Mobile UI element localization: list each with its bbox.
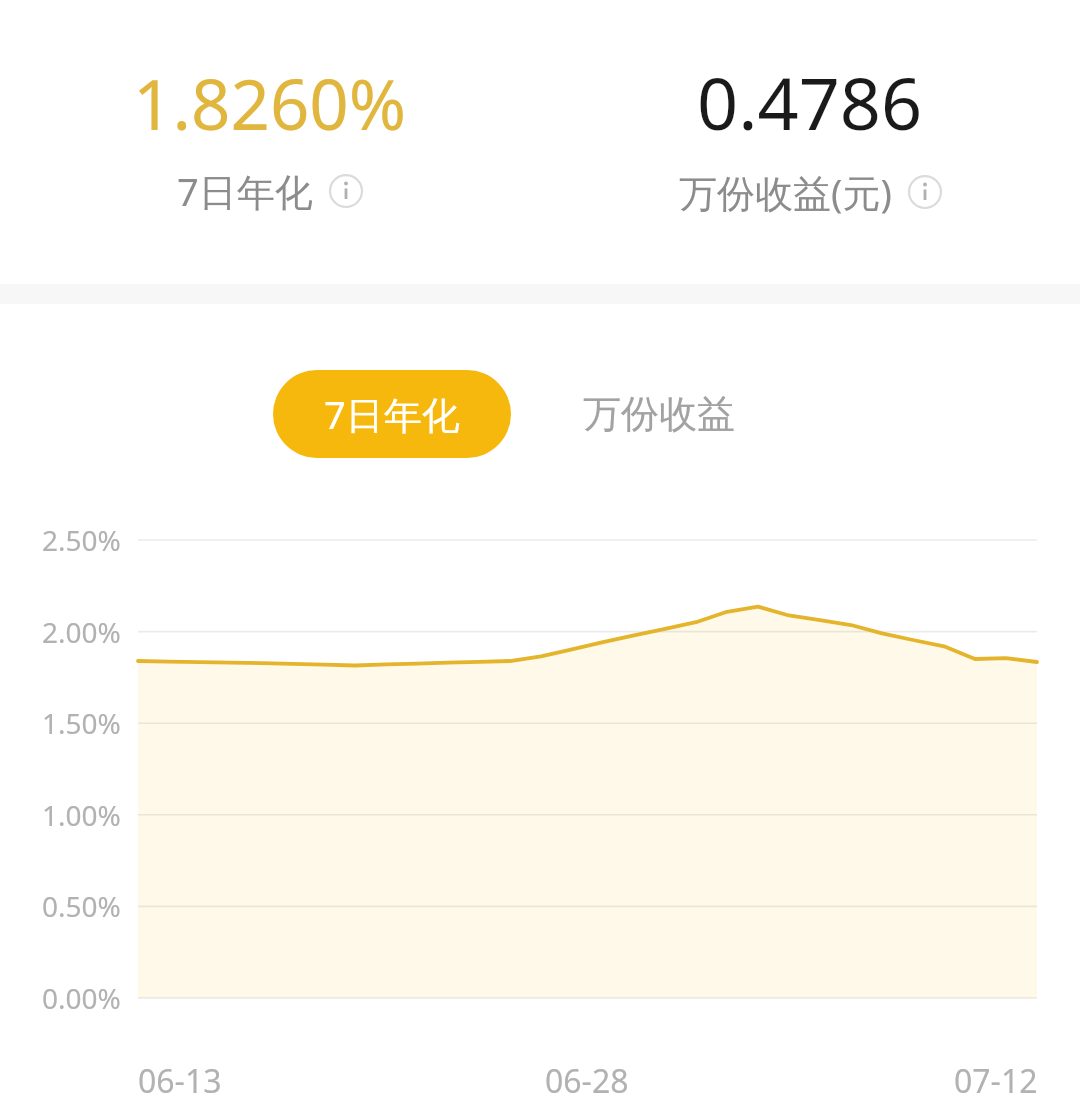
staticText: 1.50%: [42, 704, 121, 742]
staticText: 0.50%: [42, 887, 121, 925]
staticText: 万份收益(元): [679, 166, 892, 218]
staticText: 2.00%: [42, 613, 121, 651]
button[interactable]: 0.4786: [540, 0, 1080, 218]
staticText: 7日年化: [324, 388, 460, 440]
staticText: 万份收益: [583, 390, 735, 438]
button[interactable]: 7日年化收益率说明: [329, 174, 363, 208]
button[interactable]: 1.8260%: [0, 0, 540, 217]
staticText: 06-13: [138, 1059, 222, 1101]
button[interactable]: 万份收益: [567, 370, 751, 458]
staticText: 2.50%: [42, 521, 121, 559]
button[interactable]: 万份收益说明: [908, 175, 942, 209]
staticText: 07-12: [954, 1059, 1038, 1101]
staticText: 1.00%: [42, 796, 121, 834]
staticText: 1.8260%: [133, 56, 407, 150]
staticText: 06-28: [545, 1059, 629, 1101]
staticText: 7日年化: [177, 165, 313, 217]
button[interactable]: 7日年化: [273, 370, 511, 458]
staticText: 0.00%: [42, 979, 121, 1017]
staticText: 0.4786: [697, 53, 923, 151]
